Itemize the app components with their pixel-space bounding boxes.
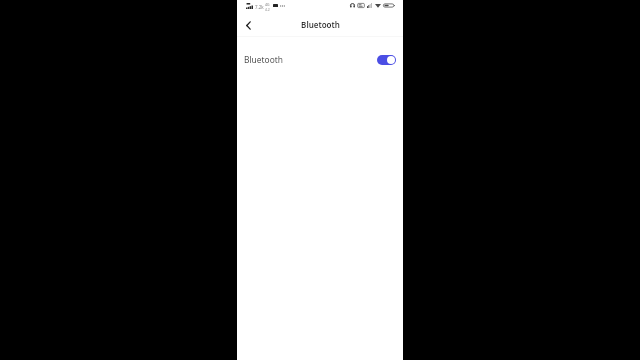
button[interactable]: Bluetooth toggle	[377, 55, 396, 65]
button[interactable]: Bluetooth	[237, 48, 403, 72]
staticText: 4G	[265, 2, 270, 7]
staticText: Bluetooth	[244, 54, 283, 65]
staticText: 7.2k	[255, 4, 264, 10]
button[interactable]: Back	[237, 12, 260, 38]
staticText: Bluetooth	[301, 19, 340, 30]
staticText: 4.2	[265, 7, 270, 12]
